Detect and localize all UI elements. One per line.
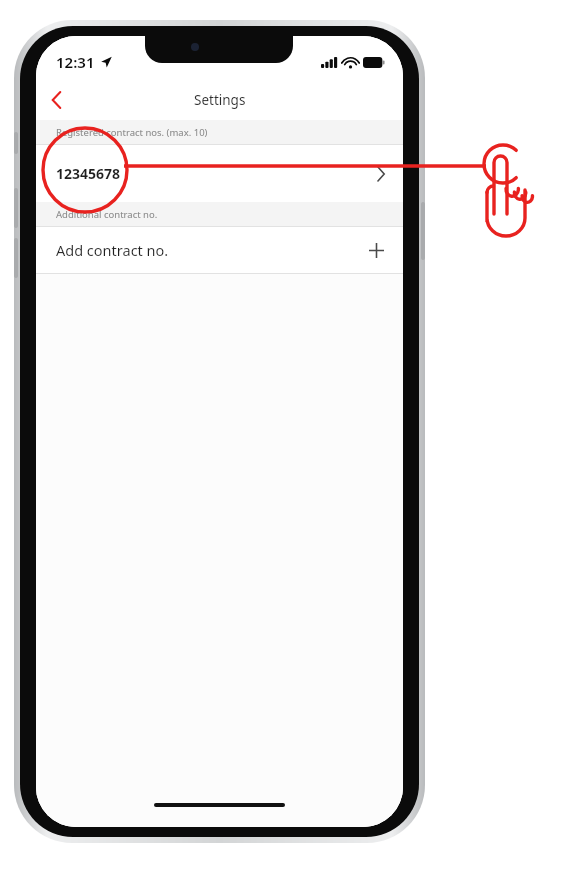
button[interactable]: Add contract no. bbox=[36, 227, 403, 273]
staticText: Settings bbox=[194, 91, 246, 109]
staticText: 12:31 bbox=[56, 52, 95, 72]
staticText: Add contract no. bbox=[56, 240, 169, 260]
staticText: Additional contract no. bbox=[56, 208, 158, 221]
other: Add bbox=[365, 239, 387, 261]
staticText: Registered contract nos. (max. 10) bbox=[56, 126, 208, 139]
staticText: 12345678 bbox=[56, 164, 121, 183]
button[interactable]: Back bbox=[36, 80, 76, 120]
button[interactable]: 12345678 bbox=[36, 145, 403, 202]
